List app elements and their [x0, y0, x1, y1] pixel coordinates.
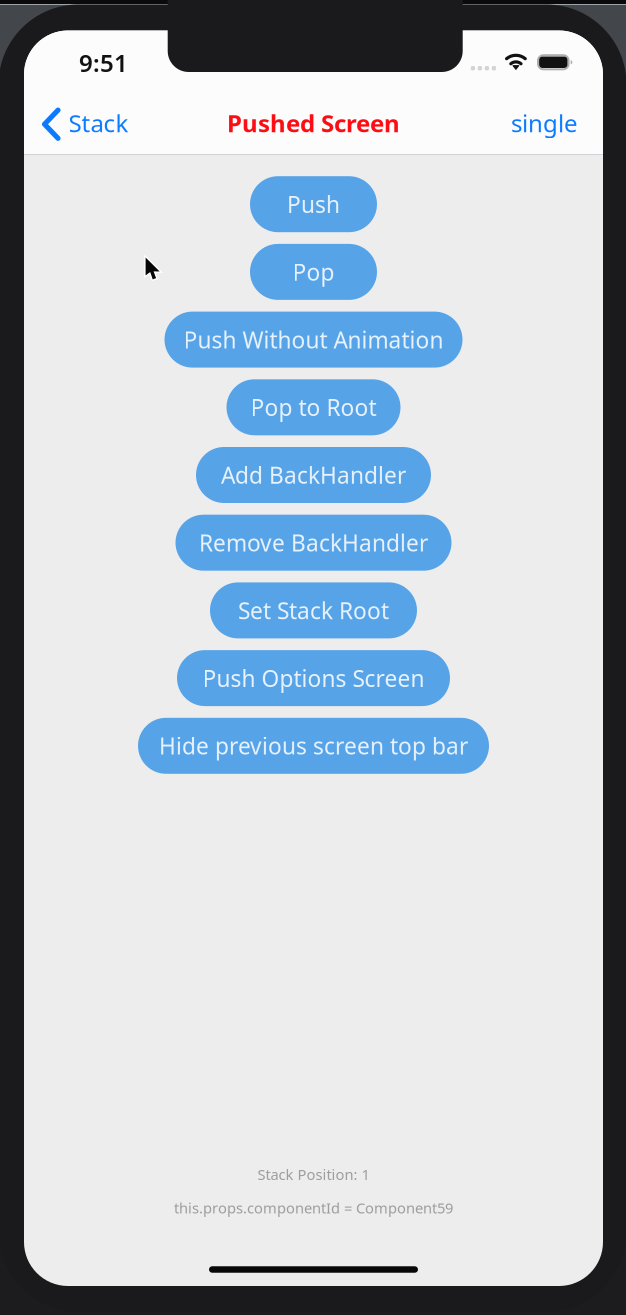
button[interactable]: Add BackHandler [196, 447, 431, 503]
staticText: this.props.componentId = Component59 [174, 1198, 453, 1217]
staticText: 9:51 [79, 47, 128, 79]
button[interactable]: Set Stack Root [210, 582, 417, 638]
button[interactable]: Remove BackHandler [175, 515, 451, 571]
staticText: Hide previous screen top bar [159, 731, 468, 761]
staticText: single [511, 107, 578, 139]
staticText: Stack Position: 1 [257, 1164, 369, 1184]
button[interactable]: Stack [35, 93, 134, 153]
button[interactable]: Pop to Root [226, 379, 400, 435]
staticText: Set Stack Root [238, 595, 389, 625]
button[interactable]: single [503, 90, 586, 156]
staticText: Add BackHandler [221, 460, 406, 490]
staticText: Stack [68, 107, 128, 139]
button[interactable]: Push Options Screen [177, 650, 450, 706]
button[interactable]: Push Without Animation [164, 312, 462, 368]
button[interactable]: Push [250, 176, 377, 232]
staticText: Push [287, 189, 340, 219]
button[interactable]: Hide previous screen top bar [138, 718, 489, 774]
button[interactable]: Pop [250, 244, 377, 300]
staticText: Remove BackHandler [199, 528, 428, 558]
staticText: Pop [292, 257, 334, 287]
staticText: Pop to Root [250, 392, 376, 422]
staticText: Pushed Screen [227, 107, 400, 139]
staticText: Push Without Animation [183, 324, 443, 355]
staticText: Push Options Screen [202, 663, 424, 693]
